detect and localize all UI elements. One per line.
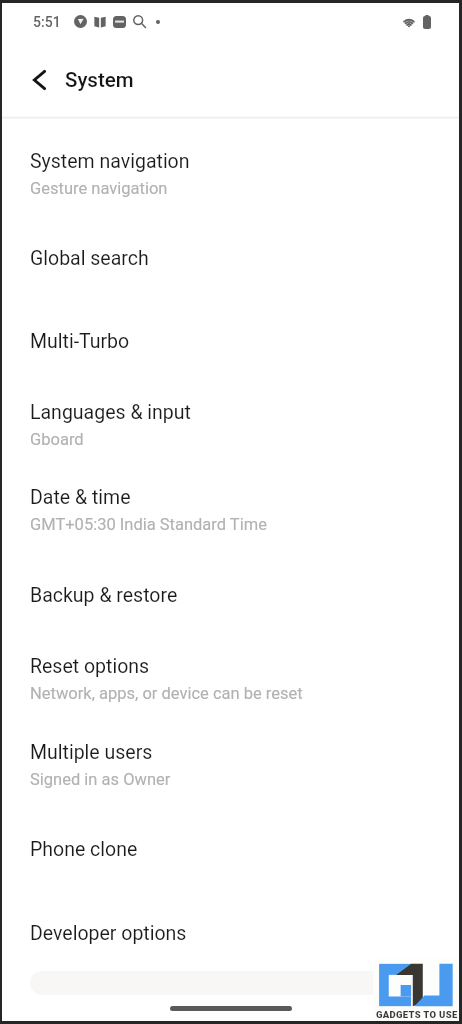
staticText: Gesture navigation	[30, 179, 168, 198]
button[interactable]: Backup & restore	[2, 534, 459, 607]
staticText: Gboard	[30, 430, 84, 449]
staticText: Languages & input	[30, 401, 191, 424]
button[interactable]: Back	[21, 62, 57, 98]
button[interactable]: Global search	[2, 198, 459, 270]
staticText: Multi-Turbo	[30, 330, 130, 353]
staticText: Developer options	[30, 922, 187, 945]
button[interactable]: Languages & input	[2, 353, 459, 449]
staticText: GADGETS TO USE	[376, 1009, 458, 1020]
staticText: Date & time	[30, 486, 131, 509]
staticText: GMT+05:30 India Standard Time	[30, 515, 267, 534]
button[interactable]: Developer options	[2, 861, 459, 945]
staticText: Backup & restore	[30, 584, 178, 607]
staticText: Signed in as Owner	[30, 770, 171, 789]
staticText: 5:51	[33, 14, 61, 30]
button[interactable]: Date & time	[2, 449, 459, 534]
staticText: System	[65, 68, 134, 92]
staticText: Phone clone	[30, 838, 138, 861]
staticText: Reset options	[30, 655, 150, 678]
staticText: Global search	[30, 247, 149, 270]
button[interactable]: Multi-Turbo	[2, 270, 459, 353]
button[interactable]: Reset options	[2, 607, 459, 703]
button[interactable]: System navigation	[2, 119, 459, 198]
staticText: Multiple users	[30, 741, 153, 764]
staticText: Network, apps, or device can be reset	[30, 684, 303, 703]
button[interactable]: Phone clone	[2, 789, 459, 861]
staticText: System navigation	[30, 150, 190, 173]
button[interactable]: Multiple users	[2, 703, 459, 789]
